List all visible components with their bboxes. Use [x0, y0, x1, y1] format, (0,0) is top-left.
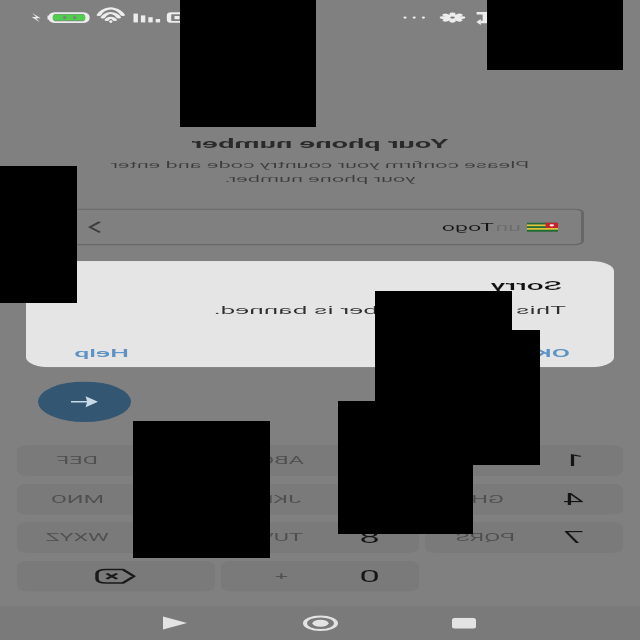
button[interactable]: 6: [17, 484, 215, 515]
button[interactable]: Recents: [442, 606, 487, 640]
staticText: MNO: [50, 493, 104, 505]
staticText: 1: [563, 451, 584, 470]
button[interactable]: 5: [221, 484, 419, 515]
staticText: 4: [563, 490, 584, 509]
staticText: ABC: [258, 455, 304, 466]
staticText: 7: [563, 528, 584, 547]
button[interactable]: 8: [221, 522, 419, 553]
staticText: Help: [74, 346, 129, 360]
staticText: Togo: [441, 221, 494, 233]
staticText: GHI: [465, 493, 504, 505]
button[interactable]: 1: [425, 445, 623, 476]
staticText: DEF: [56, 455, 98, 466]
staticText: Your phone number: [0, 137, 640, 151]
staticText: un: [495, 221, 521, 233]
button[interactable]: OK: [522, 341, 582, 365]
staticText: Sorry: [490, 278, 562, 293]
staticText: 8: [359, 528, 380, 547]
staticText: PQRS: [455, 532, 515, 543]
button[interactable]: Back: [153, 606, 198, 640]
button[interactable]: 9: [17, 522, 215, 553]
staticText: +: [274, 570, 288, 582]
button[interactable]: Next: [38, 382, 131, 422]
button[interactable]: Home: [298, 606, 343, 640]
button[interactable]: Help: [62, 341, 141, 365]
button[interactable]: Backspace: [17, 561, 215, 592]
button[interactable]: 0: [221, 561, 419, 592]
button[interactable]: un: [56, 208, 584, 245]
button[interactable]: 3: [17, 445, 215, 476]
staticText: WXYZ: [45, 532, 109, 543]
button[interactable]: 7: [425, 522, 623, 553]
button[interactable]: 4: [425, 484, 623, 515]
staticText: This phone number is banned.: [213, 303, 566, 317]
staticText: TUV: [258, 532, 303, 543]
staticText: JKL: [260, 493, 301, 505]
staticText: Please confirm your country code and ent…: [0, 159, 640, 184]
staticText: OK: [534, 346, 570, 360]
button[interactable]: 2: [221, 445, 419, 476]
staticText: 0: [359, 567, 380, 586]
